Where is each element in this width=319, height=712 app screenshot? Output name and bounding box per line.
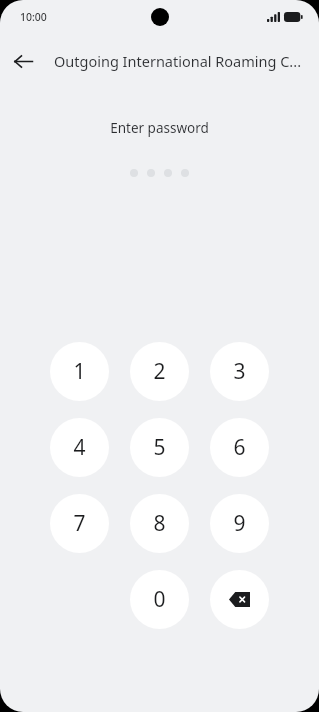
button[interactable]: 0	[130, 570, 189, 629]
staticText: 10:00	[20, 10, 47, 24]
button[interactable]: 5	[130, 418, 189, 477]
button[interactable]: 9	[210, 494, 269, 553]
staticText: 1	[73, 357, 86, 386]
staticText: 3	[233, 357, 246, 386]
staticText: Enter password	[0, 119, 319, 137]
staticText: 9	[233, 509, 246, 538]
staticText: 8	[153, 509, 166, 538]
button[interactable]: Delete	[210, 570, 269, 629]
button[interactable]: Back	[5, 43, 41, 79]
button[interactable]: 8	[130, 494, 189, 553]
button[interactable]: 1	[50, 342, 109, 401]
button[interactable]: 3	[210, 342, 269, 401]
button[interactable]: 7	[50, 494, 109, 553]
button[interactable]: 2	[130, 342, 189, 401]
button[interactable]: 6	[210, 418, 269, 477]
staticText: Outgoing International Roaming C...	[54, 51, 302, 71]
staticText: 5	[153, 433, 166, 462]
staticText: 7	[73, 509, 86, 538]
staticText: 2	[153, 357, 166, 386]
button[interactable]: 4	[50, 418, 109, 477]
staticText: 0	[153, 585, 166, 614]
staticText: 4	[73, 433, 86, 462]
staticText: 6	[233, 433, 246, 462]
